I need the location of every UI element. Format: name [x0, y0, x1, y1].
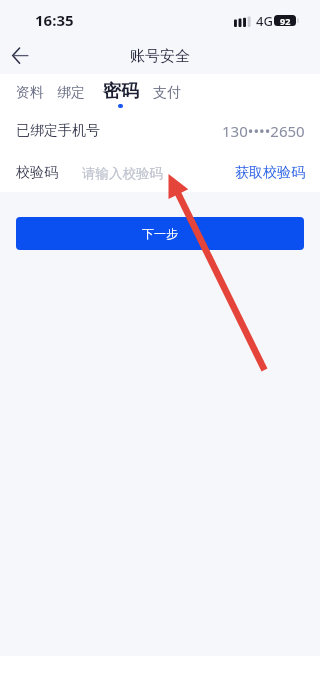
staticText: 已绑定手机号: [16, 122, 100, 140]
button[interactable]: 已绑定手机号: [0, 108, 320, 150]
button[interactable]: 支付: [148, 80, 186, 105]
staticText: 92: [280, 15, 291, 26]
staticText: 16:35: [35, 10, 74, 30]
button[interactable]: 获取校验码: [235, 160, 305, 186]
staticText: 绑定: [57, 84, 85, 102]
staticText: 获取校验码: [235, 164, 305, 182]
button[interactable]: 绑定: [52, 80, 90, 105]
button[interactable]: 请输入校验码: [82, 160, 235, 186]
button[interactable]: 下一步: [16, 217, 304, 250]
staticText: 4G: [256, 12, 273, 30]
button[interactable]: 密码: [97, 78, 145, 108]
button[interactable]: Back: [4, 38, 38, 72]
staticText: 校验码: [16, 164, 58, 182]
staticText: 下一步: [142, 226, 178, 241]
staticText: 请输入校验码: [82, 165, 163, 182]
staticText: 支付: [153, 84, 181, 102]
staticText: 账号安全: [130, 47, 190, 66]
staticText: 资料: [16, 84, 44, 102]
staticText: 密码: [103, 80, 139, 103]
staticText: 130••••2650: [222, 121, 305, 141]
button[interactable]: 资料: [11, 80, 49, 105]
